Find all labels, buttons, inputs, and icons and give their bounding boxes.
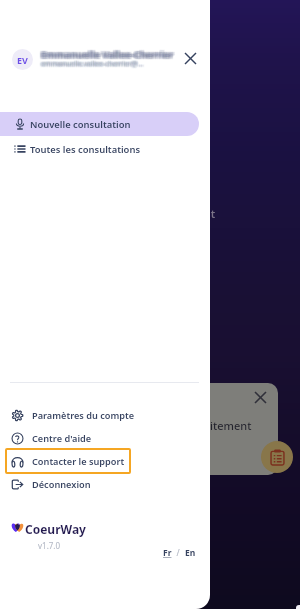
staticText: Emmanuelle Vallee-Cherrier — [39, 47, 172, 60]
staticText: Emmanuelle Vallee-Cherrier — [39, 50, 172, 63]
staticText: emmanuelle.vallee-cherrier@... — [39, 60, 142, 70]
staticText: Emmanuelle Vallee-Cherrier — [41, 49, 174, 62]
staticText: emmanuelle.vallee-cherrier@... — [42, 58, 145, 68]
staticText: Emmanuelle Vallee-Cherrier — [43, 47, 176, 60]
staticText: emmanuelle.vallee-cherrier@... — [40, 59, 143, 69]
staticText: emmanuelle.vallee-cherrier@... — [42, 60, 145, 70]
staticText: emmanuelle.vallee-cherrier@... — [39, 58, 142, 68]
button[interactable]: En — [185, 547, 196, 559]
staticText: Emmanuelle Vallee-Cherrier — [39, 49, 172, 62]
staticText: emmanuelle.vallee-cherrier@... — [42, 59, 145, 69]
staticText: emmanuelle.vallee-cherrier@... — [43, 60, 146, 70]
button[interactable]: Fr — [163, 547, 172, 559]
staticText: Emmanuelle Vallee-Cherrier — [43, 46, 176, 59]
staticText: Emmanuelle Vallee-Cherrier — [41, 50, 174, 63]
staticText: emmanuelle.vallee-cherrier@... — [39, 59, 142, 69]
staticText: Emmanuelle Vallee-Cherrier — [40, 46, 173, 59]
staticText: emmanuelle.vallee-cherrier@... — [41, 60, 144, 70]
staticText: emmanuelle.vallee-cherrier@... — [40, 59, 143, 69]
staticText: Emmanuelle Vallee-Cherrier — [42, 49, 175, 62]
staticText: emmanuelle.vallee-cherrier@... — [42, 60, 145, 70]
staticText: Emmanuelle Vallee-Cherrier — [43, 50, 176, 63]
button[interactable]: Ordonnance — [261, 441, 293, 473]
staticText: Fr — [163, 547, 172, 559]
button[interactable]: Toutes les consultations — [0, 137, 199, 161]
button[interactable]: Contacter le support — [5, 448, 131, 474]
staticText: emmanuelle.vallee-cherrier@... — [41, 58, 144, 68]
staticText: emmanuelle.vallee-cherrier@... — [43, 58, 146, 68]
staticText: Emmanuelle Vallee-Cherrier — [39, 47, 172, 60]
staticText: emmanuelle.vallee-cherrier@... — [40, 60, 143, 70]
staticText: emmanuelle.vallee-cherrier@... — [41, 59, 144, 69]
staticText: Emmanuelle Vallee-Cherrier — [41, 49, 174, 62]
staticText: Emmanuelle Vallee-Cherrier — [43, 48, 176, 61]
staticText: Paramètres du compte — [32, 409, 135, 422]
staticText: emmanuelle.vallee-cherrier@... — [42, 61, 145, 71]
staticText: Emmanuelle Vallee-Cherrier — [39, 46, 172, 59]
staticText: emmanuelle.vallee-cherrier@... — [40, 61, 143, 71]
staticText: Emmanuelle Vallee-Cherrier — [43, 50, 176, 63]
staticText: emmanuelle.vallee-cherrier@... — [41, 61, 144, 71]
staticText: Emmanuelle Vallee-Cherrier — [43, 47, 176, 60]
staticText: Emmanuelle Vallee-Cherrier — [40, 47, 173, 60]
staticText: Emmanuelle Vallee-Cherrier — [43, 47, 176, 60]
staticText: emmanuelle.vallee-cherrier@... — [40, 61, 143, 71]
staticText: Emmanuelle Vallee-Cherrier — [41, 47, 174, 60]
staticText: emmanuelle.vallee-cherrier@... — [41, 59, 144, 69]
staticText: Emmanuelle Vallee-Cherrier — [42, 48, 175, 61]
staticText: Emmanuelle Vallee-Cherrier — [41, 47, 174, 60]
staticText: emmanuelle.vallee-cherrier@... — [42, 58, 145, 68]
staticText: emmanuelle.vallee-cherrier@... — [43, 59, 146, 69]
staticText: Emmanuelle Vallee-Cherrier — [42, 47, 175, 60]
staticText: Emmanuelle Vallee-Cherrier — [42, 49, 175, 62]
staticText: Emmanuelle Vallee-Cherrier — [40, 49, 173, 62]
staticText: Emmanuelle Vallee-Cherrier — [39, 48, 172, 61]
staticText: emmanuelle.vallee-cherrier@... — [43, 61, 146, 71]
staticText: Emmanuelle Vallee-Cherrier — [39, 47, 172, 60]
staticText: Emmanuelle Vallee-Cherrier — [39, 49, 172, 62]
staticText: emmanuelle.vallee-cherrier@... — [39, 59, 142, 69]
staticText: Emmanuelle Vallee-Cherrier — [40, 47, 173, 60]
staticText: emmanuelle.vallee-cherrier@... — [42, 60, 145, 70]
staticText: Emmanuelle Vallee-Cherrier — [40, 49, 173, 62]
staticText: Emmanuelle Vallee-Cherrier — [42, 50, 175, 63]
staticText: emmanuelle.vallee-cherrier@... — [40, 60, 143, 70]
staticText: emmanuelle.vallee-cherrier@... — [42, 59, 145, 69]
staticText: Emmanuelle Vallee-Cherrier — [39, 48, 172, 61]
staticText: emmanuelle.vallee-cherrier@... — [40, 58, 143, 68]
staticText: emmanuelle.vallee-cherrier@... — [42, 58, 145, 68]
staticText: emmanuelle.vallee-cherrier@... — [40, 58, 143, 68]
button[interactable]: Déconnexion — [5, 471, 97, 497]
staticText: emmanuelle.vallee-cherrier@... — [43, 58, 146, 68]
staticText: Centre d'aide — [32, 432, 92, 445]
button[interactable]: Fermer — [178, 46, 203, 71]
staticText: Toutes les consultations — [30, 143, 141, 156]
button[interactable]: Centre d'aide — [5, 425, 98, 451]
staticText: Emmanuelle Vallee-Cherrier — [40, 50, 173, 63]
staticText: Emmanuelle Vallee-Cherrier — [39, 49, 172, 62]
staticText: emmanuelle.vallee-cherrier@... — [40, 58, 143, 68]
staticText: / — [172, 547, 185, 559]
staticText: emmanuelle.vallee-cherrier@... — [39, 58, 142, 68]
staticText: emmanuelle.vallee-cherrier@... — [39, 60, 142, 70]
staticText: emmanuelle.vallee-cherrier@... — [39, 61, 142, 71]
staticText: Emmanuelle Vallee-Cherrier — [39, 49, 172, 62]
button[interactable]: Nouvelle consultation — [0, 112, 199, 136]
staticText: emmanuelle.vallee-cherrier@... — [41, 60, 144, 70]
staticText: Emmanuelle Vallee-Cherrier — [43, 48, 176, 61]
staticText: emmanuelle.vallee-cherrier@... — [40, 60, 143, 70]
staticText: emmanuelle.vallee-cherrier@... — [40, 60, 143, 70]
staticText: CoeurWay — [25, 521, 86, 537]
staticText: Commencer une consultation instant — [16, 206, 216, 221]
staticText: emmanuelle.vallee-cherrier@... — [42, 58, 145, 68]
staticText: Emmanuelle Vallee-Cherrier — [43, 49, 176, 62]
button[interactable]: Paramètres du compte — [5, 402, 141, 428]
staticText: Emmanuelle Vallee-Cherrier — [40, 48, 173, 61]
staticText: emmanuelle.vallee-cherrier@... — [43, 59, 146, 69]
staticText: Emmanuelle Vallee-Cherrier — [43, 49, 176, 62]
staticText: Emmanuelle Vallee-Cherrier — [42, 46, 175, 59]
staticText: emmanuelle.vallee-cherrier@... — [43, 60, 146, 70]
staticText: emmanuelle.vallee-cherrier@... — [41, 58, 144, 68]
staticText: Votre traitement — [164, 418, 252, 433]
staticText: emmanuelle.vallee-cherrier@... — [42, 59, 145, 69]
